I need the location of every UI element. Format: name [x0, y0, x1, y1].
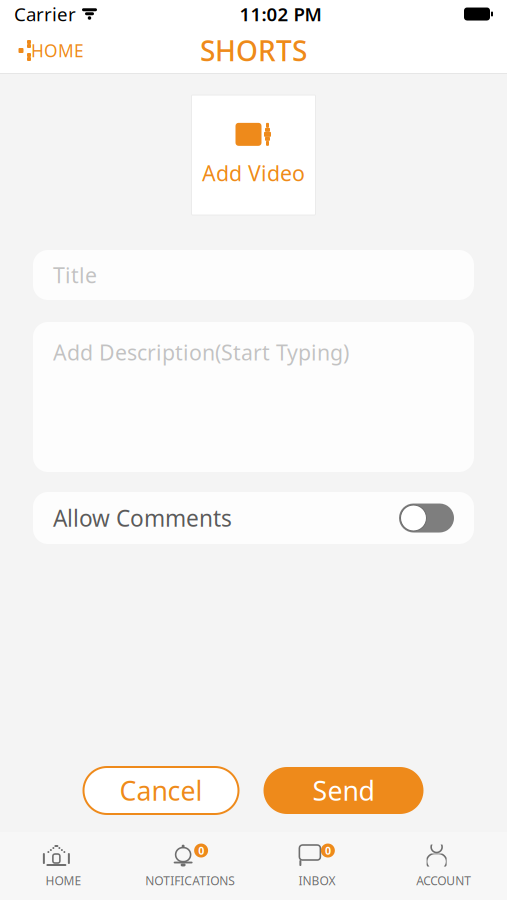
staticText: Send [312, 773, 374, 808]
staticText: 0 [325, 843, 331, 858]
button[interactable]: 0 [127, 834, 254, 897]
staticText: Allow Comments [53, 503, 232, 533]
button[interactable]: Add Video [191, 95, 315, 215]
staticText: NOTIFICATIONS [145, 872, 235, 888]
button[interactable]: 0 [253, 834, 380, 897]
button[interactable]: ACCOUNT [380, 834, 507, 897]
button[interactable]: Cancel [83, 767, 238, 814]
staticText: Add Description(Start Typing) [53, 338, 349, 366]
button[interactable]: Send [263, 767, 423, 814]
button[interactable]: HOME [0, 834, 127, 897]
staticText: SHORTS [200, 32, 307, 69]
button[interactable]: Allow Comments [399, 503, 454, 532]
staticText: Add Video [202, 159, 305, 187]
staticText: HOME [31, 39, 84, 62]
staticText: Cancel [119, 773, 202, 808]
button[interactable]: HOME [12, 33, 92, 68]
staticText: 0 [198, 843, 204, 858]
staticText: Carrier [14, 2, 76, 26]
staticText: 11:02 PM [239, 2, 321, 26]
staticText: Title [53, 261, 97, 289]
staticText: INBOX [298, 872, 335, 888]
staticText: ACCOUNT [416, 872, 471, 888]
staticText: HOME [45, 872, 81, 888]
